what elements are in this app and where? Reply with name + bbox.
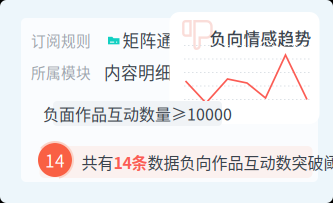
staticText: 数据负向作品互动数突破阈值 xyxy=(147,150,333,174)
button[interactable]: 订阅规则 xyxy=(31,31,180,49)
staticText: 矩阵通主品牌 xyxy=(122,28,224,52)
staticText: 14条 xyxy=(113,150,147,174)
staticText: 订阅规则 xyxy=(31,29,91,51)
staticText: 所属模块 xyxy=(31,61,91,83)
staticText: 共有 xyxy=(81,150,113,174)
button[interactable]: 所属模块 xyxy=(31,63,180,81)
staticText: 负向情感趋势 xyxy=(209,26,311,50)
staticText: 14 xyxy=(45,147,65,173)
staticText: 负面作品互动数量≥10000 xyxy=(43,102,232,125)
staticText: 内容明细、舆情预警 xyxy=(104,60,257,84)
